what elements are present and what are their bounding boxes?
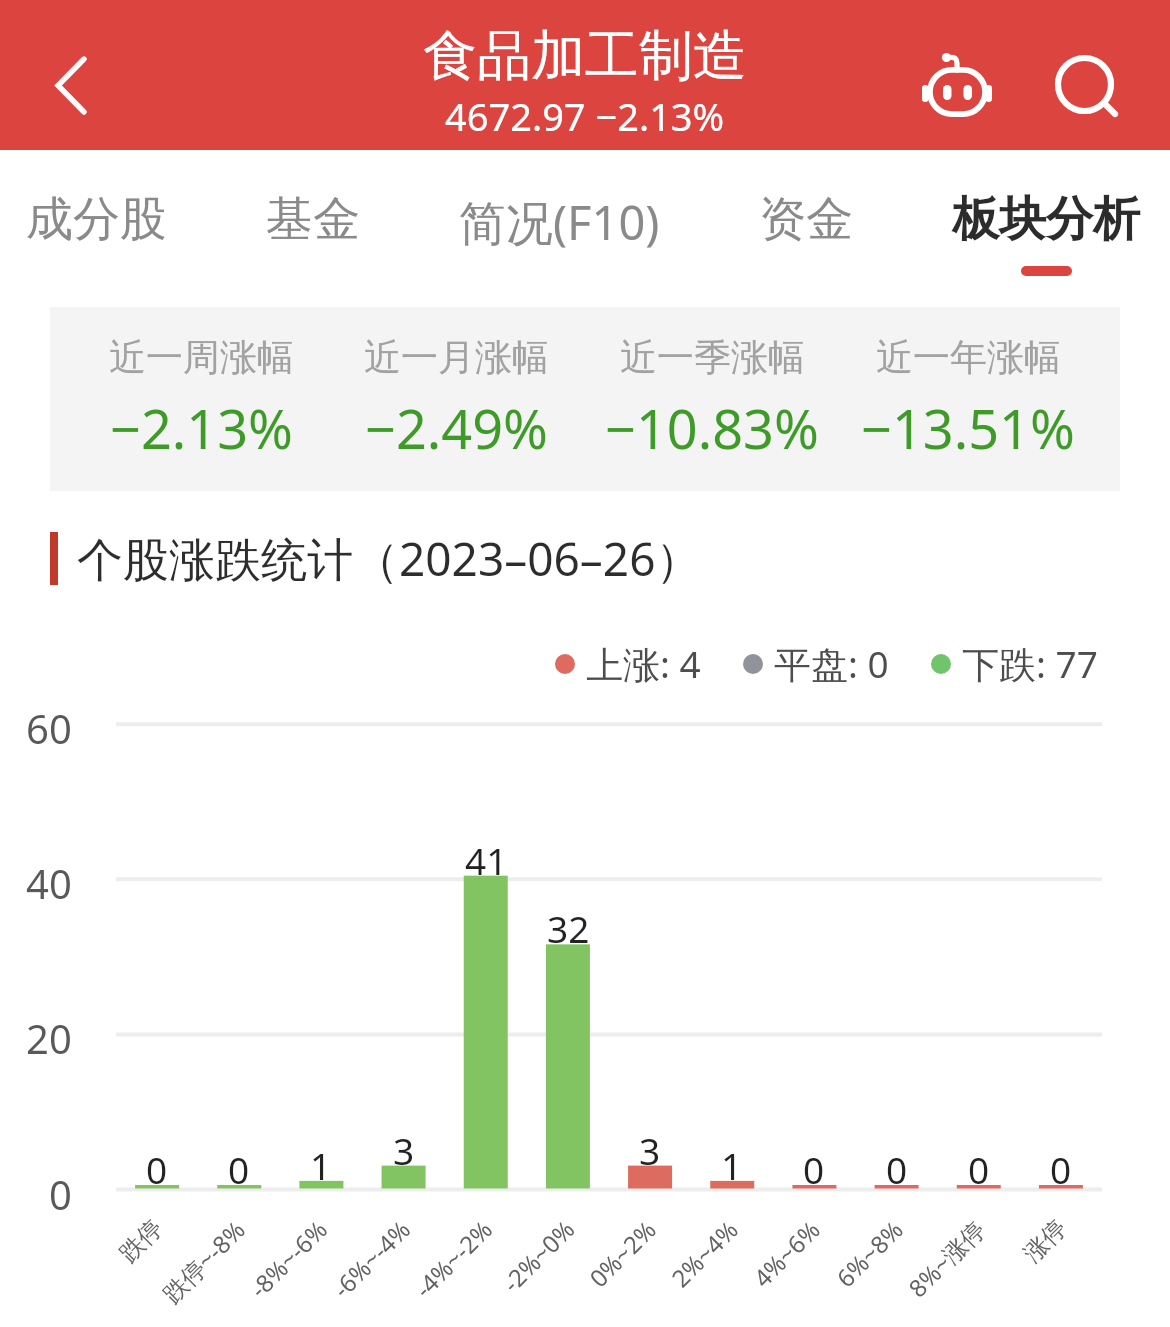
staticText: −13.51% [861, 391, 1075, 465]
staticText: 近一年涨幅 [876, 334, 1061, 381]
staticText: 60 [26, 701, 72, 753]
staticText: 0 [228, 1144, 250, 1190]
staticText: 基金 [266, 190, 360, 249]
button[interactable]: 板块分析 [952, 150, 1140, 276]
staticText: −2.49% [365, 391, 548, 465]
staticText: 41 [465, 835, 508, 881]
staticText: 0 [1050, 1144, 1072, 1190]
staticText: 跌停 [113, 1213, 169, 1268]
staticText: 0 [968, 1144, 990, 1190]
button[interactable]: Search [1019, 20, 1149, 150]
staticText: 0%~2% [582, 1213, 663, 1294]
staticText: 20 [26, 1011, 72, 1063]
button[interactable]: 资金 [759, 150, 853, 276]
staticText: -8%~-6% [242, 1213, 334, 1304]
staticText: 上涨: 4 [586, 638, 701, 689]
staticText: 3 [639, 1125, 661, 1171]
staticText: 3 [393, 1125, 415, 1171]
staticText: 2%~4% [664, 1213, 745, 1294]
staticText: 简况(F10) [459, 190, 660, 254]
staticText: 涨停 [1017, 1213, 1073, 1268]
staticText: 8%~涨停 [901, 1213, 992, 1304]
button[interactable]: 基金 [266, 150, 360, 276]
staticText: 平盘: 0 [774, 638, 889, 689]
staticText: 近一季涨幅 [620, 334, 805, 381]
staticText: 1 [721, 1140, 743, 1186]
staticText: -2%~0% [495, 1213, 581, 1299]
staticText: −10.83% [605, 391, 819, 465]
staticText: 跌停~-8% [155, 1213, 252, 1309]
staticText: 0 [49, 1167, 72, 1219]
staticText: 板块分析 [952, 190, 1140, 249]
staticText: 32 [547, 903, 590, 949]
staticText: -6%~-4% [325, 1213, 417, 1304]
staticText: 4672.97 −2.13% [445, 90, 725, 142]
staticText: 个股涨跌统计（2023–06–26） [77, 527, 702, 590]
button[interactable]: 成分股 [26, 150, 167, 276]
staticText: 近一月涨幅 [364, 334, 549, 381]
staticText: 0 [803, 1144, 825, 1190]
staticText: 0 [886, 1144, 908, 1190]
staticText: 成分股 [26, 190, 167, 249]
button[interactable]: Back [0, 20, 140, 150]
staticText: 下跌: 77 [962, 638, 1098, 689]
staticText: 1 [310, 1140, 332, 1186]
button[interactable]: 简况(F10) [459, 150, 660, 280]
staticText: 4%~6% [746, 1213, 827, 1294]
staticText: 0 [146, 1144, 168, 1190]
button[interactable]: AI assistant [897, 22, 1017, 152]
staticText: 近一周涨幅 [109, 334, 294, 381]
staticText: 食品加工制造 [423, 22, 747, 90]
staticText: −2.13% [110, 391, 293, 465]
staticText: -4%~-2% [407, 1213, 499, 1304]
staticText: 6%~8% [829, 1213, 910, 1294]
staticText: 资金 [759, 190, 853, 249]
staticText: 40 [26, 856, 72, 908]
